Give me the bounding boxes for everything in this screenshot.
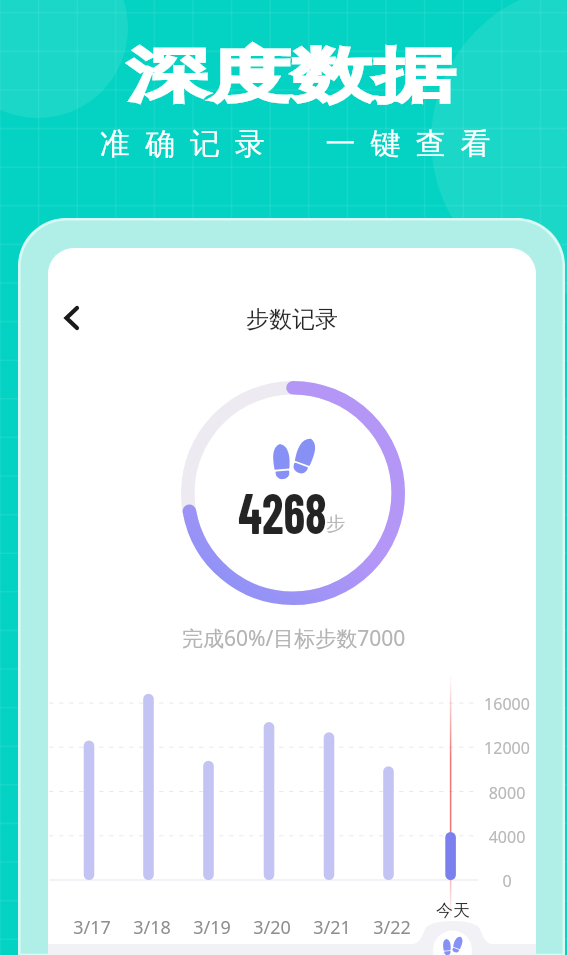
staticText: 3/17	[62, 915, 122, 940]
staticText: 今天	[423, 900, 483, 921]
staticText: 步	[326, 512, 345, 536]
staticText: 深度数据	[127, 38, 455, 113]
staticText: 3/22	[362, 915, 422, 940]
staticText: 3/18	[122, 915, 182, 940]
button[interactable]: Steps	[433, 931, 472, 955]
staticText: 4268	[238, 477, 327, 545]
staticText: 16000	[457, 693, 536, 715]
staticText: 3/20	[242, 915, 302, 940]
staticText: 8000	[457, 782, 536, 804]
staticText: 3/21	[302, 915, 362, 940]
button[interactable]: Back	[51, 298, 91, 338]
staticText: 准确记录 一键查看	[100, 122, 506, 163]
staticText: 12000	[457, 737, 536, 759]
staticText: 0	[457, 870, 536, 892]
staticText: 步数记录	[246, 305, 338, 334]
staticText: 4000	[457, 826, 536, 848]
staticText: 完成60%/目标步数7000	[182, 624, 406, 653]
staticText: 3/19	[182, 915, 242, 940]
